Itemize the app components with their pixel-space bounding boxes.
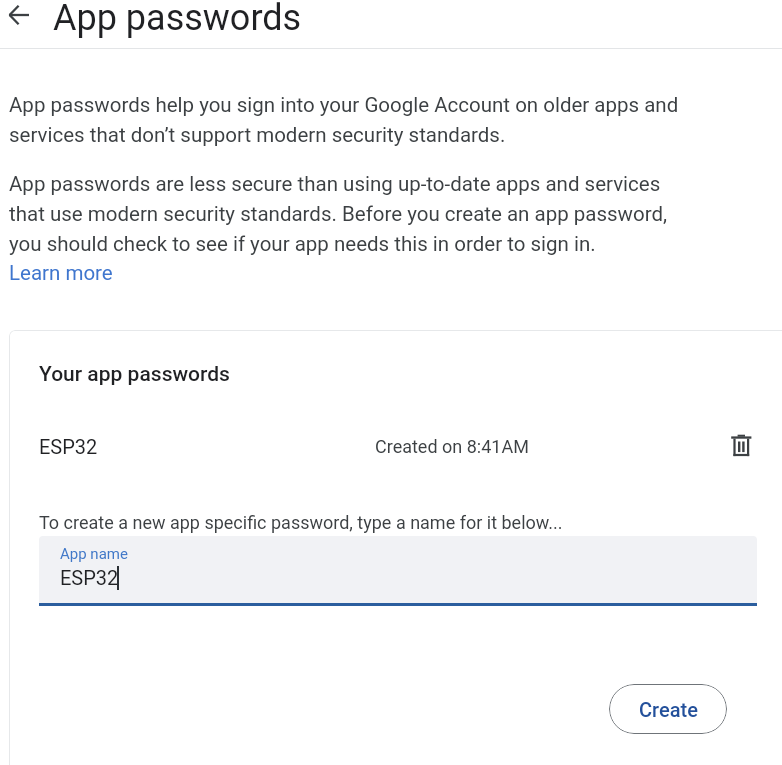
staticText: Your app passwords <box>39 362 230 387</box>
staticText: App passwords <box>53 0 302 39</box>
staticText: App name <box>60 545 128 563</box>
staticText: Created on 8:41AM <box>375 436 529 457</box>
button[interactable]: Create <box>609 684 727 734</box>
button[interactable]: Delete app password <box>722 426 760 464</box>
button[interactable]: Back <box>0 0 38 38</box>
staticText: To create a new app specific password, t… <box>39 512 563 533</box>
staticText: App passwords help you sign into your Go… <box>9 88 691 148</box>
staticText: Learn more <box>9 256 113 286</box>
button[interactable]: App name <box>39 536 757 607</box>
staticText: ESP32 <box>60 566 119 589</box>
button[interactable]: ESP32 <box>9 420 782 480</box>
staticText: Create <box>639 698 698 721</box>
staticText: App passwords are less secure than using… <box>9 167 691 257</box>
staticText: ESP32 <box>39 435 98 458</box>
button[interactable]: Learn more <box>9 256 113 286</box>
